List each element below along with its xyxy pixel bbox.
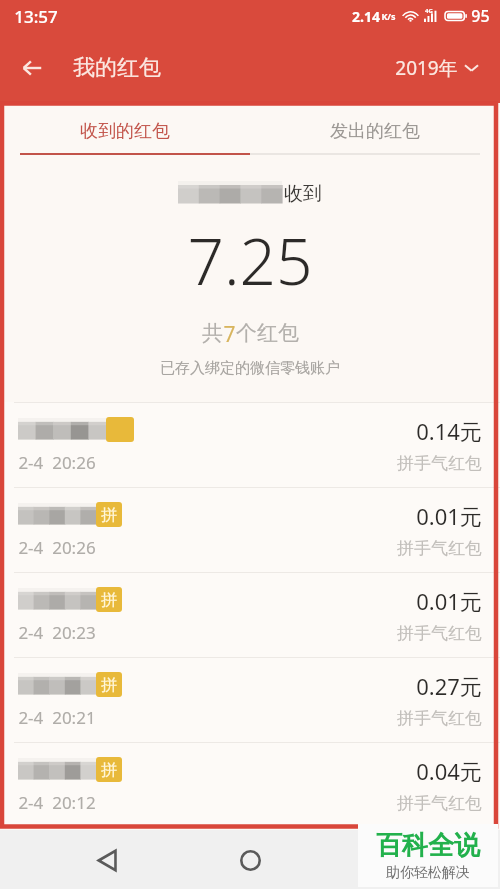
button[interactable]: 发出的红包: [250, 109, 500, 153]
staticText: K/s: [381, 10, 396, 22]
staticText: 拼手气红包: [397, 708, 482, 729]
staticText: 收到的红包: [80, 120, 170, 143]
staticText: 0.01元: [416, 501, 482, 531]
button[interactable]: Back: [84, 837, 130, 883]
staticText: 13:57: [14, 5, 58, 28]
staticText: 拼: [101, 675, 117, 695]
staticText: 0.27元: [416, 671, 482, 701]
staticText: 95: [471, 5, 490, 27]
staticText: 7.25: [187, 217, 313, 304]
staticText: 百科全说: [376, 829, 480, 862]
staticText: 拼: [101, 505, 117, 525]
button[interactable]: Back: [6, 42, 58, 94]
button[interactable]: Home: [227, 837, 273, 883]
button[interactable]: 拼: [0, 743, 500, 827]
button[interactable]: 2-4 20:26: [0, 403, 500, 487]
staticText: 助你轻松解决: [386, 864, 470, 882]
staticText: 2-4 20:26: [18, 451, 96, 474]
staticText: 个红包: [236, 320, 299, 346]
staticText: 拼手气红包: [397, 623, 482, 644]
button[interactable]: 拼: [0, 488, 500, 572]
staticText: 2-4 20:21: [18, 706, 96, 729]
staticText: 收到: [284, 182, 322, 206]
staticText: 0.01元: [416, 586, 482, 616]
staticText: 4G: [425, 7, 433, 15]
button[interactable]: 拼: [0, 573, 500, 657]
staticText: 2019年: [395, 55, 458, 81]
staticText: 拼: [101, 760, 117, 780]
staticText: 发出的红包: [330, 120, 420, 143]
staticText: 我的红包: [73, 54, 161, 82]
button[interactable]: 2019年: [389, 49, 484, 87]
staticText: 拼手气红包: [397, 453, 482, 474]
staticText: 7: [223, 320, 236, 349]
staticText: 2-4 20:26: [18, 536, 96, 559]
staticText: 拼手气红包: [397, 793, 482, 814]
staticText: 2-4 20:23: [18, 621, 96, 644]
staticText: 共: [202, 320, 223, 346]
staticText: 0.14元: [416, 416, 482, 446]
staticText: 2.14: [352, 7, 380, 26]
button[interactable]: 收到的红包: [0, 109, 250, 153]
staticText: 已存入绑定的微信零钱账户: [160, 359, 340, 378]
staticText: 0.04元: [416, 756, 482, 786]
staticText: 拼手气红包: [397, 538, 482, 559]
button[interactable]: 拼: [0, 658, 500, 742]
staticText: 2-4 20:12: [18, 791, 96, 814]
staticText: 拼: [101, 590, 117, 610]
